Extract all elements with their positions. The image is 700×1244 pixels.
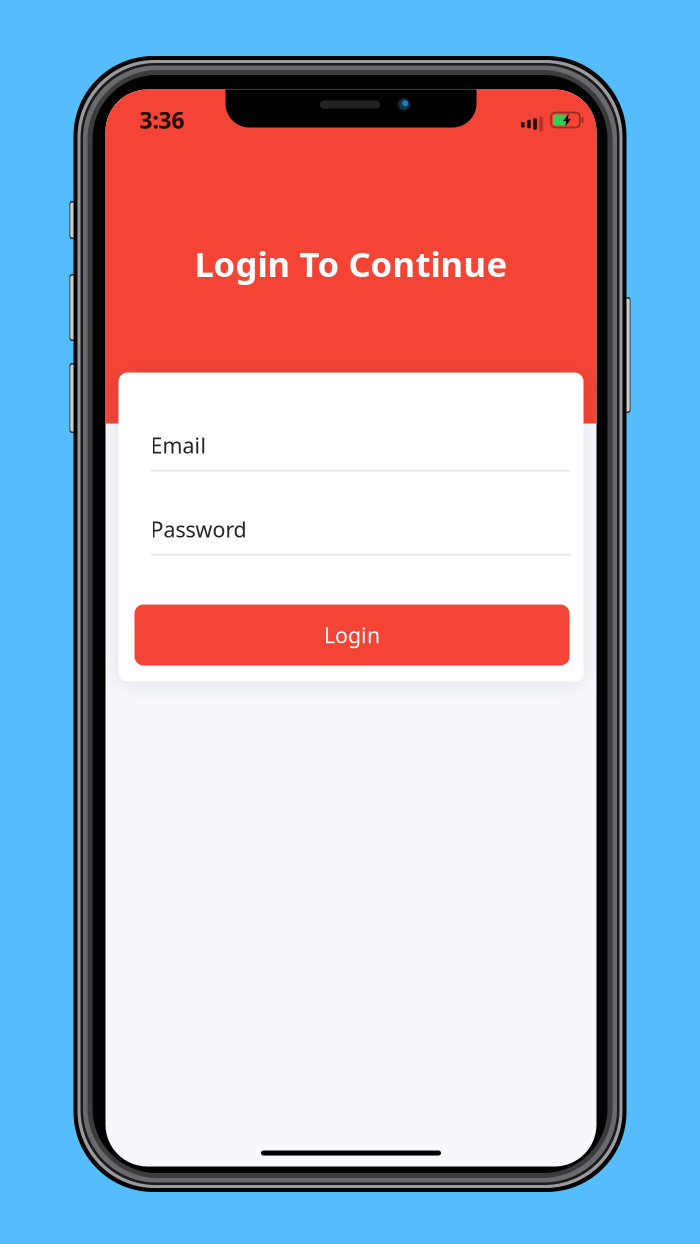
staticText: Email: [150, 431, 206, 459]
button[interactable]: Login: [134, 604, 569, 665]
staticText: Login To Continue: [194, 240, 507, 286]
staticText: Login: [324, 621, 380, 649]
staticText: Password: [150, 515, 246, 543]
button[interactable]: Email: [150, 423, 570, 471]
button[interactable]: Password: [150, 507, 570, 555]
staticText: 3:36: [139, 105, 184, 135]
